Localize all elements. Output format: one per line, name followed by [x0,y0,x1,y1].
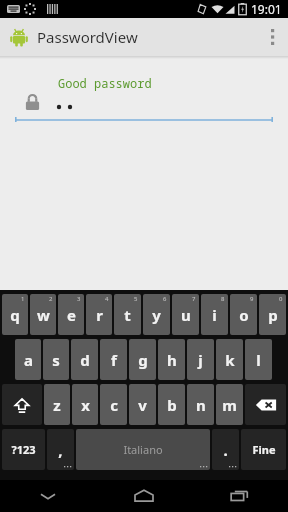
staticText: p [268,305,278,325]
button[interactable]: t [114,294,141,335]
staticText: 1 [21,295,25,303]
staticText: Fine [252,442,276,457]
staticText: v [138,395,147,415]
button[interactable]: g [129,339,156,380]
button[interactable]: x [72,384,98,425]
button[interactable]: j [187,339,214,380]
button[interactable]: a [15,339,41,380]
staticText: s [52,350,60,370]
button[interactable]: e [58,294,84,335]
staticText: 7 [192,295,196,303]
staticText: ?123 [11,442,36,457]
button[interactable]: q [2,294,28,335]
staticText: o [239,305,249,325]
staticText: b [167,395,177,415]
button[interactable]: y [143,294,170,335]
button[interactable]: n [187,384,214,425]
button[interactable]: Shift [2,384,42,425]
button[interactable]: Recent apps [192,480,288,512]
button[interactable]: c [100,384,127,425]
staticText: 3 [77,295,81,303]
staticText: 8 [221,295,225,303]
staticText: a [24,350,33,370]
staticText: PasswordView [37,27,138,47]
staticText: k [225,350,235,370]
button[interactable]: Italiano [76,429,210,470]
staticText: d [80,350,90,370]
staticText: f [111,350,117,370]
staticText: 0 [279,295,283,303]
staticText: , [58,440,63,460]
staticText: 2 [49,295,53,303]
staticText: g [138,350,148,370]
button[interactable]: More options [258,18,288,56]
staticText: x [81,395,90,415]
staticText: 9 [250,295,254,303]
button[interactable]: z [44,384,70,425]
staticText: 5 [134,295,138,303]
button[interactable]: Backspace [245,384,286,425]
staticText: 6 [163,295,167,303]
staticText: q [10,305,20,325]
staticText: r [96,305,103,325]
button[interactable]: i [201,294,228,335]
button[interactable]: . [212,429,239,470]
button[interactable]: u [172,294,199,335]
staticText: h [167,350,177,370]
staticText: n [196,395,206,415]
staticText: w [37,305,50,325]
button[interactable]: ?123 [2,429,45,470]
staticText: Good password [58,75,152,91]
button[interactable]: Home [96,480,192,512]
button[interactable]: m [216,384,243,425]
button[interactable]: w [30,294,56,335]
staticText: . [223,440,228,460]
staticText: Italiano [123,442,163,457]
button[interactable]: Hide keyboard [0,480,96,512]
button[interactable]: f [100,339,127,380]
staticText: j [198,350,203,370]
staticText: i [212,305,217,325]
staticText: c [110,395,118,415]
button[interactable]: b [158,384,185,425]
button[interactable]: p [259,294,286,335]
staticText: y [152,305,161,325]
button[interactable]: r [86,294,112,335]
staticText: e [67,305,76,325]
button[interactable]: h [158,339,185,380]
button[interactable]: l [245,339,272,380]
staticText: l [256,350,261,370]
button[interactable]: s [43,339,69,380]
staticText: 4 [105,295,109,303]
button[interactable]: Fine [241,429,286,470]
staticText: z [53,395,61,415]
button[interactable]: d [71,339,98,380]
staticText: t [124,305,131,325]
button[interactable]: k [216,339,243,380]
button[interactable]: o [230,294,257,335]
button[interactable]: , [47,429,74,470]
staticText: u [181,305,191,325]
button[interactable]: v [129,384,156,425]
staticText: 19:01 [251,1,282,17]
button[interactable] [15,117,288,123]
staticText: m [222,395,237,415]
